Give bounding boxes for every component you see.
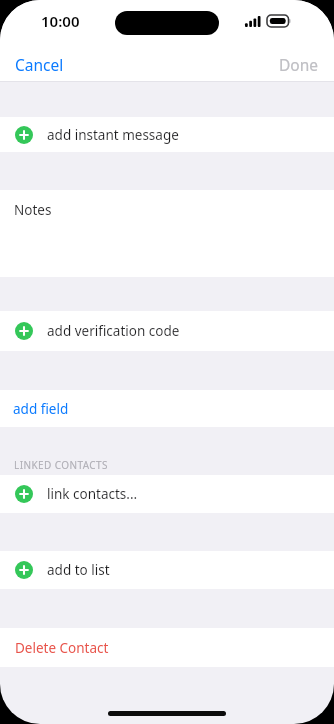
other: add instant message — [15, 126, 33, 144]
staticText: add field — [13, 400, 69, 418]
button[interactable]: add field — [0, 390, 334, 427]
button[interactable]: add to list — [0, 551, 334, 589]
staticText: Cancel — [15, 54, 64, 75]
button[interactable]: add verification code — [0, 311, 334, 351]
button[interactable]: add instant message — [0, 117, 334, 152]
staticText: add to list — [47, 561, 110, 579]
staticText: 10:00 — [41, 11, 80, 31]
staticText: LINKED CONTACTS — [14, 458, 108, 472]
staticText: link contacts... — [47, 485, 138, 503]
staticText: add verification code — [47, 322, 180, 340]
button[interactable]: Done — [264, 46, 334, 82]
staticText: Notes — [14, 201, 52, 219]
other: link contacts... — [15, 485, 33, 503]
button[interactable]: Notes — [0, 190, 334, 277]
button[interactable]: Cancel — [0, 46, 79, 82]
staticText: Delete Contact — [15, 639, 109, 657]
button[interactable]: Delete Contact — [0, 628, 334, 667]
other: add to list — [15, 561, 33, 579]
staticText: Done — [279, 54, 319, 75]
staticText: add instant message — [47, 126, 179, 144]
button[interactable]: link contacts... — [0, 475, 334, 513]
other: add verification code — [15, 322, 33, 340]
